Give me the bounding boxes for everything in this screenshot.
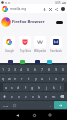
button[interactable]: Voice search: [41, 6, 47, 12]
button[interactable]: f: [22, 83, 29, 91]
button[interactable]: 6: [32, 65, 39, 73]
button[interactable]: Back: [11, 110, 23, 120]
button[interactable]: Tabs: [56, 21, 63, 24]
button[interactable]: Shift: [0, 92, 9, 100]
staticText: 6: [34, 67, 37, 72]
staticText: t: [28, 76, 30, 81]
button[interactable]: Google: [3, 36, 15, 53]
staticText: 1: [2, 67, 5, 72]
button[interactable]: Close: [47, 6, 53, 12]
staticText: Facebook: [50, 49, 62, 53]
button[interactable]: q: [0, 74, 6, 82]
button[interactable]: ?123: [0, 101, 11, 109]
button[interactable]: App shortcut: [35, 60, 40, 64]
staticText: 0: [62, 67, 65, 72]
button[interactable]: 9: [53, 65, 60, 73]
button[interactable]: w: [6, 74, 12, 82]
staticText: a: [5, 85, 8, 90]
button[interactable]: n: [43, 92, 50, 100]
staticText: 3: [14, 67, 17, 72]
staticText: p: [62, 76, 65, 81]
button[interactable]: y: [32, 74, 39, 82]
staticText: v: [32, 94, 34, 99]
staticText: i: [49, 76, 50, 81]
staticText: c: [25, 94, 27, 99]
button[interactable]: Recents: [44, 110, 56, 120]
button[interactable]: Backspace: [57, 92, 67, 100]
button[interactable]: Wikipedia: [34, 36, 46, 53]
button[interactable]: 3: [12, 65, 18, 73]
staticText: 9: [55, 67, 58, 72]
button[interactable]: App shortcut: [47, 60, 52, 64]
button[interactable]: j: [43, 83, 50, 91]
button[interactable]: b: [36, 92, 43, 100]
staticText: k: [53, 85, 55, 90]
button[interactable]: App shortcut: [8, 60, 13, 64]
button[interactable]: d: [15, 83, 22, 91]
button[interactable]: c: [22, 92, 29, 100]
button[interactable]: Emoji: [11, 101, 18, 109]
staticText: mozilla.org: [10, 7, 27, 11]
button[interactable]: e: [12, 74, 18, 82]
button[interactable]: u: [39, 74, 46, 82]
staticText: x: [18, 94, 20, 99]
staticText: Firefox Browser: [12, 19, 45, 25]
button[interactable]: h: [36, 83, 43, 91]
staticText: q: [2, 76, 5, 81]
button[interactable]: o: [53, 74, 60, 82]
button[interactable]: p: [60, 74, 67, 82]
staticText: b: [38, 94, 41, 99]
staticText: u: [41, 76, 44, 81]
button[interactable]: m: [50, 92, 57, 100]
button[interactable]: Top Sites: [19, 36, 31, 53]
button[interactable]: g: [29, 83, 36, 91]
button[interactable]: v: [29, 92, 36, 100]
button[interactable]: s: [9, 83, 15, 91]
staticText: m: [52, 94, 56, 99]
button[interactable]: x: [15, 92, 22, 100]
button[interactable]: 4: [18, 65, 25, 73]
button[interactable]: .: [47, 101, 54, 109]
staticText: Google: [5, 49, 14, 53]
button[interactable]: Google: [1, 5, 8, 12]
staticText: Wikipedia: [34, 49, 46, 53]
button[interactable]: t: [25, 74, 32, 82]
button[interactable]: Facebook: [50, 36, 62, 53]
staticText: f: [25, 85, 27, 90]
staticText: 4: [20, 67, 23, 72]
button[interactable]: App shortcut: [20, 60, 25, 64]
staticText: j: [46, 85, 47, 90]
staticText: ?123: [3, 104, 9, 107]
button[interactable]: Go: [54, 101, 67, 109]
staticText: 2: [8, 67, 11, 72]
button[interactable]: a: [3, 83, 9, 91]
staticText: 7: [41, 67, 44, 72]
staticText: w: [8, 76, 11, 81]
staticText: y: [35, 76, 37, 81]
button[interactable]: 5: [25, 65, 32, 73]
button[interactable]: Home: [28, 110, 40, 120]
staticText: o: [55, 76, 58, 81]
button[interactable]: 7: [39, 65, 46, 73]
button[interactable]: 1: [0, 65, 6, 73]
staticText: l: [60, 85, 61, 90]
staticText: g: [31, 85, 34, 90]
button[interactable]: i: [46, 74, 53, 82]
button[interactable]: z: [9, 92, 15, 100]
button[interactable]: 2: [6, 65, 12, 73]
button[interactable]: r: [18, 74, 25, 82]
button[interactable]: k: [50, 83, 57, 91]
staticText: e: [14, 76, 17, 81]
staticText: d: [17, 85, 20, 90]
staticText: Top Sites: [20, 49, 31, 53]
staticText: h: [38, 85, 41, 90]
button[interactable]: l: [57, 83, 64, 91]
button[interactable]: Account: [59, 5, 66, 12]
staticText: n: [45, 94, 48, 99]
staticText: 8: [48, 67, 51, 72]
button[interactable]: Share: [53, 6, 59, 12]
button[interactable]: 8: [46, 65, 53, 73]
staticText: s: [11, 85, 13, 90]
button[interactable]: 0: [60, 65, 67, 73]
